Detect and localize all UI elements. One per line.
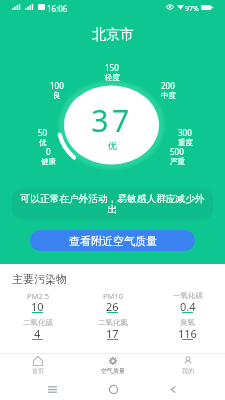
staticText: 臭氧 bbox=[180, 318, 195, 327]
staticText: 主要污染物 bbox=[12, 272, 67, 286]
staticText: 一氧化碳 bbox=[173, 291, 203, 300]
staticText: 优 bbox=[108, 140, 117, 151]
staticText: 良 bbox=[53, 91, 61, 100]
staticText: 17 bbox=[106, 326, 119, 341]
staticText: 中度 bbox=[161, 91, 176, 100]
button[interactable]: PM2.5 bbox=[0, 291, 75, 315]
button[interactable]: Recent apps bbox=[43, 380, 61, 398]
button[interactable]: 二氧化硫 bbox=[0, 318, 75, 342]
staticText: 50 bbox=[38, 127, 48, 138]
staticText: 97% bbox=[185, 4, 199, 14]
staticText: 4 bbox=[34, 326, 41, 341]
button[interactable]: Back bbox=[164, 380, 182, 398]
staticText: 二氧化硫 bbox=[23, 318, 53, 327]
staticText: PM2.5 bbox=[27, 291, 49, 301]
button[interactable]: 二氧化氮 bbox=[75, 318, 150, 342]
staticText: 0.4 bbox=[180, 299, 196, 314]
staticText: 优 bbox=[39, 138, 47, 147]
staticText: 116 bbox=[178, 326, 197, 341]
staticText: 首页 bbox=[32, 367, 44, 375]
staticText: 16:06 bbox=[47, 3, 68, 14]
button[interactable]: 可以正常在户外活动，易敏感人群应减少外出 bbox=[12, 189, 213, 219]
staticText: 10 bbox=[31, 299, 44, 314]
button[interactable]: 首页 bbox=[0, 354, 75, 375]
staticText: 26 bbox=[106, 299, 119, 314]
staticText: PM10 bbox=[103, 291, 123, 301]
staticText: 150 bbox=[105, 62, 119, 73]
button[interactable]: 我的 bbox=[150, 354, 225, 375]
button[interactable]: Home bbox=[104, 380, 122, 398]
staticText: 北京市 bbox=[92, 26, 134, 44]
staticText: 空气质量 bbox=[101, 367, 125, 375]
button[interactable]: 查看附近空气质量 bbox=[30, 230, 195, 251]
staticText: 轻度 bbox=[105, 73, 120, 82]
button[interactable]: 臭氧 bbox=[150, 318, 225, 342]
staticText: 二氧化氮 bbox=[98, 318, 128, 327]
staticText: 37 bbox=[91, 100, 133, 141]
staticText: 500 bbox=[170, 146, 184, 157]
button[interactable]: 一氧化碳 bbox=[150, 291, 225, 315]
staticText: 重度 bbox=[178, 138, 193, 147]
staticText: 查看附近空气质量 bbox=[69, 234, 157, 248]
staticText: 可以正常在户外活动，易敏感人群应减少外出 bbox=[18, 193, 207, 216]
staticText: 200 bbox=[161, 80, 175, 91]
staticText: 0 bbox=[46, 146, 51, 157]
button[interactable]: 空气质量 bbox=[75, 354, 150, 375]
button[interactable]: PM10 bbox=[75, 291, 150, 315]
staticText: 健康 bbox=[41, 157, 56, 166]
staticText: 我的 bbox=[182, 367, 194, 375]
staticText: 100 bbox=[50, 80, 64, 91]
staticText: 严重 bbox=[170, 157, 185, 166]
staticText: 300 bbox=[178, 127, 192, 138]
